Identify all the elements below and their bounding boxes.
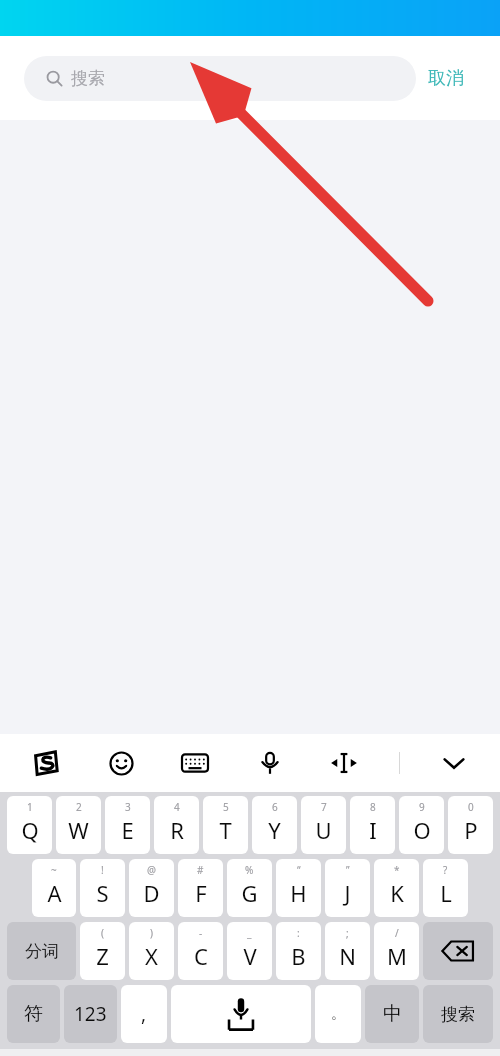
staticText: - <box>199 926 203 940</box>
staticText: I <box>369 815 377 845</box>
button[interactable]: % <box>227 859 272 917</box>
staticText: ? <box>443 863 448 877</box>
button[interactable]: 2 <box>56 796 101 854</box>
button[interactable]: ! <box>80 859 125 917</box>
button[interactable]: 搜索 <box>24 56 416 101</box>
button[interactable]: Emoji <box>101 743 141 783</box>
button[interactable]: Voice input <box>250 743 290 783</box>
button[interactable]: 取消 <box>416 59 476 98</box>
staticText: 1 <box>27 800 33 814</box>
button[interactable]: Move cursor <box>324 743 364 783</box>
button[interactable]: Space, voice input <box>171 985 311 1043</box>
button[interactable]: - <box>178 922 223 980</box>
staticText: K <box>390 878 404 908</box>
staticText: _ <box>247 926 252 940</box>
button[interactable]: 1 <box>7 796 52 854</box>
staticText: ) <box>150 926 153 940</box>
staticText: / <box>395 926 399 940</box>
staticText: B <box>291 941 306 971</box>
staticText: W <box>68 815 89 845</box>
button[interactable]: / <box>374 922 419 980</box>
button[interactable]: 9 <box>399 796 444 854</box>
staticText: 8 <box>370 800 376 814</box>
staticText: F <box>195 878 207 908</box>
button[interactable]: 搜索 <box>423 985 493 1043</box>
staticText: Q <box>21 815 39 845</box>
staticText: : <box>297 926 300 940</box>
button[interactable]: Hide keyboard <box>434 743 474 783</box>
staticText: 0 <box>468 800 474 814</box>
staticText: 4 <box>174 800 180 814</box>
staticText: H <box>290 878 307 908</box>
staticText: “ <box>297 863 301 877</box>
staticText: 搜索 <box>441 1004 475 1025</box>
button[interactable]: 分词 <box>7 922 76 980</box>
button[interactable]: 。 <box>315 985 361 1043</box>
staticText: Z <box>96 941 109 971</box>
staticText: G <box>241 878 258 908</box>
staticText: 搜索 <box>71 68 105 89</box>
staticText: X <box>145 941 158 971</box>
staticText: 9 <box>419 800 425 814</box>
staticText: 2 <box>76 800 82 814</box>
button[interactable]: 中 <box>365 985 419 1043</box>
button[interactable]: 7 <box>301 796 346 854</box>
button[interactable]: ~ <box>32 859 76 917</box>
staticText: D <box>143 878 160 908</box>
staticText: 取消 <box>428 67 464 90</box>
staticText: @ <box>147 863 156 877</box>
button[interactable]: : <box>276 922 321 980</box>
button[interactable]: ; <box>325 922 370 980</box>
button[interactable]: Backspace <box>423 922 493 980</box>
staticText: , <box>141 1001 147 1027</box>
staticText: ~ <box>51 863 57 877</box>
button[interactable]: 符 <box>7 985 60 1043</box>
staticText: C <box>194 941 208 971</box>
button[interactable]: # <box>178 859 223 917</box>
button[interactable]: ” <box>325 859 370 917</box>
button[interactable]: @ <box>129 859 174 917</box>
staticText: ; <box>346 926 349 940</box>
button[interactable]: 4 <box>154 796 199 854</box>
staticText: N <box>339 941 356 971</box>
button[interactable]: _ <box>227 922 272 980</box>
button[interactable]: 6 <box>252 796 297 854</box>
staticText: E <box>121 815 134 845</box>
button[interactable]: 8 <box>350 796 395 854</box>
staticText: ” <box>346 863 350 877</box>
staticText: ( <box>101 926 104 940</box>
staticText: L <box>440 878 452 908</box>
staticText: 分词 <box>25 941 59 962</box>
staticText: 5 <box>223 800 229 814</box>
button[interactable]: 5 <box>203 796 248 854</box>
button[interactable]: Sogou input method <box>26 743 66 783</box>
staticText: % <box>245 863 254 877</box>
staticText: M <box>387 941 407 971</box>
button[interactable]: ) <box>129 922 174 980</box>
staticText: * <box>394 863 400 877</box>
staticText: 中 <box>383 1002 402 1026</box>
staticText: J <box>344 878 351 908</box>
staticText: T <box>219 815 232 845</box>
staticText: P <box>464 815 478 845</box>
staticText: S <box>96 878 109 908</box>
staticText: V <box>243 941 257 971</box>
staticText: Y <box>268 815 281 845</box>
button[interactable]: 3 <box>105 796 150 854</box>
button[interactable]: Keyboard layout <box>175 743 215 783</box>
button[interactable]: “ <box>276 859 321 917</box>
staticText: 3 <box>125 800 131 814</box>
button[interactable]: ? <box>423 859 468 917</box>
staticText: A <box>47 878 62 908</box>
staticText: 7 <box>321 800 327 814</box>
button[interactable]: 123 <box>64 985 117 1043</box>
button[interactable]: * <box>374 859 419 917</box>
button[interactable]: , <box>121 985 167 1043</box>
staticText: 123 <box>74 1001 107 1027</box>
staticText: # <box>197 863 204 877</box>
staticText: 符 <box>24 1002 43 1026</box>
staticText: R <box>170 815 184 845</box>
button[interactable]: 0 <box>448 796 493 854</box>
button[interactable]: ( <box>80 922 125 980</box>
staticText: O <box>413 815 431 845</box>
